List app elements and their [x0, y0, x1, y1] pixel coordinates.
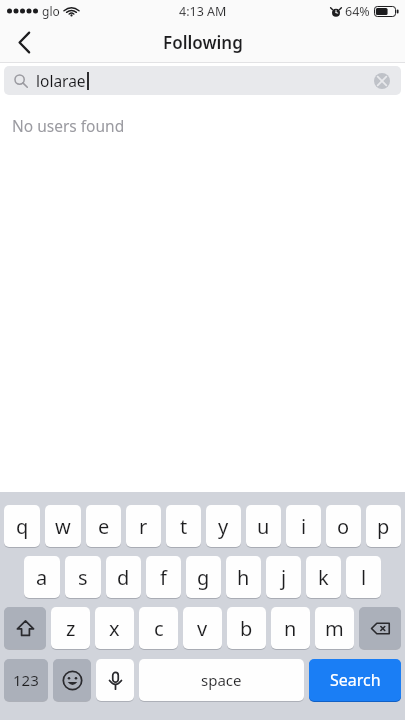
- button[interactable]: i: [286, 505, 321, 547]
- staticText: z: [66, 615, 76, 642]
- button[interactable]: f: [146, 556, 181, 598]
- button[interactable]: g: [186, 556, 221, 598]
- button[interactable]: Clear text: [369, 68, 395, 94]
- button[interactable]: space: [139, 659, 304, 701]
- staticText: lolarae: [36, 70, 86, 91]
- staticText: glo: [42, 3, 60, 19]
- button[interactable]: e: [86, 505, 121, 547]
- button[interactable]: lolarae: [4, 66, 401, 95]
- staticText: w: [55, 513, 71, 540]
- staticText: No users found: [12, 115, 125, 136]
- staticText: 4:13 AM: [179, 3, 227, 20]
- staticText: f: [160, 564, 167, 591]
- button[interactable]: Search: [309, 659, 401, 701]
- button[interactable]: o: [326, 505, 361, 547]
- staticText: a: [36, 564, 48, 591]
- staticText: r: [139, 513, 148, 540]
- button[interactable]: b: [227, 607, 266, 649]
- staticText: j: [281, 564, 287, 591]
- button[interactable]: p: [366, 505, 401, 547]
- staticText: o: [337, 513, 350, 540]
- button[interactable]: q: [4, 505, 40, 547]
- button[interactable]: r: [126, 505, 161, 547]
- staticText: b: [240, 615, 253, 642]
- button[interactable]: Emoji: [53, 659, 91, 701]
- staticText: v: [197, 615, 208, 642]
- button[interactable]: x: [95, 607, 134, 649]
- button[interactable]: t: [166, 505, 201, 547]
- staticText: d: [117, 564, 130, 591]
- button[interactable]: l: [346, 556, 381, 598]
- button[interactable]: y: [206, 505, 241, 547]
- button[interactable]: d: [106, 556, 141, 598]
- staticText: m: [325, 615, 344, 642]
- staticText: y: [218, 513, 229, 540]
- button[interactable]: k: [306, 556, 341, 598]
- button[interactable]: u: [246, 505, 281, 547]
- staticText: p: [377, 513, 390, 540]
- button[interactable]: Dictation: [96, 659, 134, 701]
- staticText: 123: [13, 670, 39, 690]
- staticText: space: [201, 670, 242, 690]
- button[interactable]: 123: [4, 659, 48, 701]
- button[interactable]: m: [315, 607, 354, 649]
- button[interactable]: n: [271, 607, 310, 649]
- button[interactable]: Shift: [4, 607, 46, 649]
- button[interactable]: h: [226, 556, 261, 598]
- staticText: h: [237, 564, 250, 591]
- button[interactable]: a: [24, 556, 60, 598]
- button[interactable]: w: [45, 505, 81, 547]
- staticText: s: [78, 564, 88, 591]
- button[interactable]: z: [51, 607, 90, 649]
- button[interactable]: Back: [0, 22, 48, 62]
- staticText: x: [109, 615, 120, 642]
- staticText: k: [318, 564, 329, 591]
- staticText: n: [284, 615, 297, 642]
- staticText: e: [98, 513, 110, 540]
- staticText: Search: [330, 669, 381, 691]
- staticText: t: [180, 513, 188, 540]
- staticText: l: [361, 564, 367, 591]
- staticText: u: [257, 513, 270, 540]
- button[interactable]: c: [139, 607, 178, 649]
- button[interactable]: v: [183, 607, 222, 649]
- button[interactable]: Backspace: [359, 607, 401, 649]
- staticText: Following: [163, 31, 243, 54]
- staticText: 64%: [345, 3, 370, 20]
- staticText: i: [301, 513, 307, 540]
- staticText: q: [16, 513, 29, 540]
- button[interactable]: j: [266, 556, 301, 598]
- staticText: c: [154, 615, 164, 642]
- button[interactable]: s: [65, 556, 101, 598]
- staticText: g: [197, 564, 210, 591]
